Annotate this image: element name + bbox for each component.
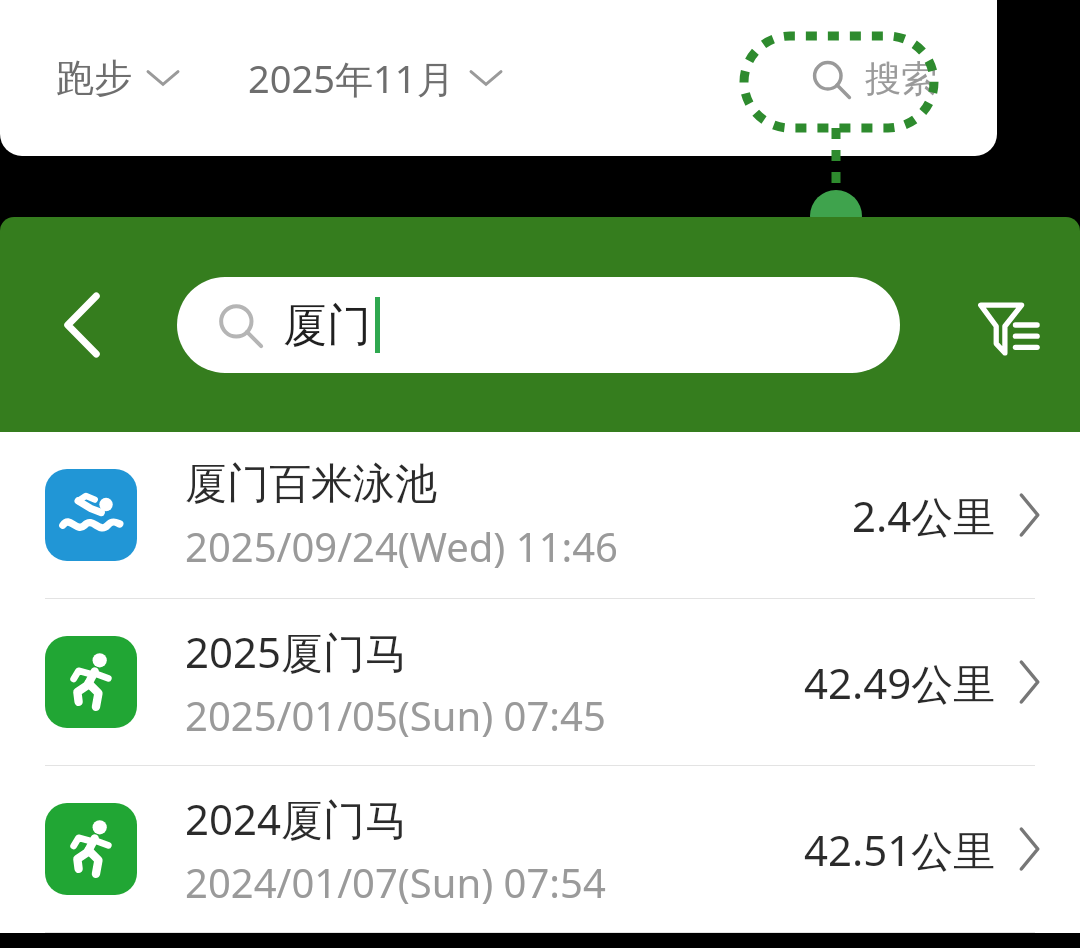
button[interactable]: 跑步 xyxy=(56,54,178,102)
staticText: 厦门百米泳池 xyxy=(185,458,437,511)
staticText: 跑步 xyxy=(56,54,132,102)
staticText: 2025/09/24(Wed) 11:46 xyxy=(185,519,618,573)
staticText: 2024/01/07(Sun) 07:54 xyxy=(185,855,606,909)
staticText: 2025/01/05(Sun) 07:45 xyxy=(185,688,606,742)
button[interactable]: Filter xyxy=(958,275,1058,375)
button[interactable]: 2025厦门马 xyxy=(0,599,1080,765)
staticText: 2025年11月 xyxy=(248,52,455,104)
staticText: 2.4公里 xyxy=(852,487,996,544)
staticText: 厦门 xyxy=(283,298,371,353)
button[interactable]: 搜索 xyxy=(811,56,937,101)
button[interactable]: 2025年11月 xyxy=(248,52,501,104)
staticText: 2025厦门马 xyxy=(185,623,408,680)
button[interactable]: 厦门 xyxy=(177,277,900,373)
staticText: 2024厦门马 xyxy=(185,790,408,847)
button[interactable]: 厦门百米泳池 xyxy=(0,432,1080,598)
button[interactable]: 2024厦门马 xyxy=(0,766,1080,932)
staticText: 42.51公里 xyxy=(804,821,996,878)
staticText: 搜索 xyxy=(865,56,937,101)
button[interactable]: Back xyxy=(36,279,128,371)
staticText: 42.49公里 xyxy=(804,654,996,711)
